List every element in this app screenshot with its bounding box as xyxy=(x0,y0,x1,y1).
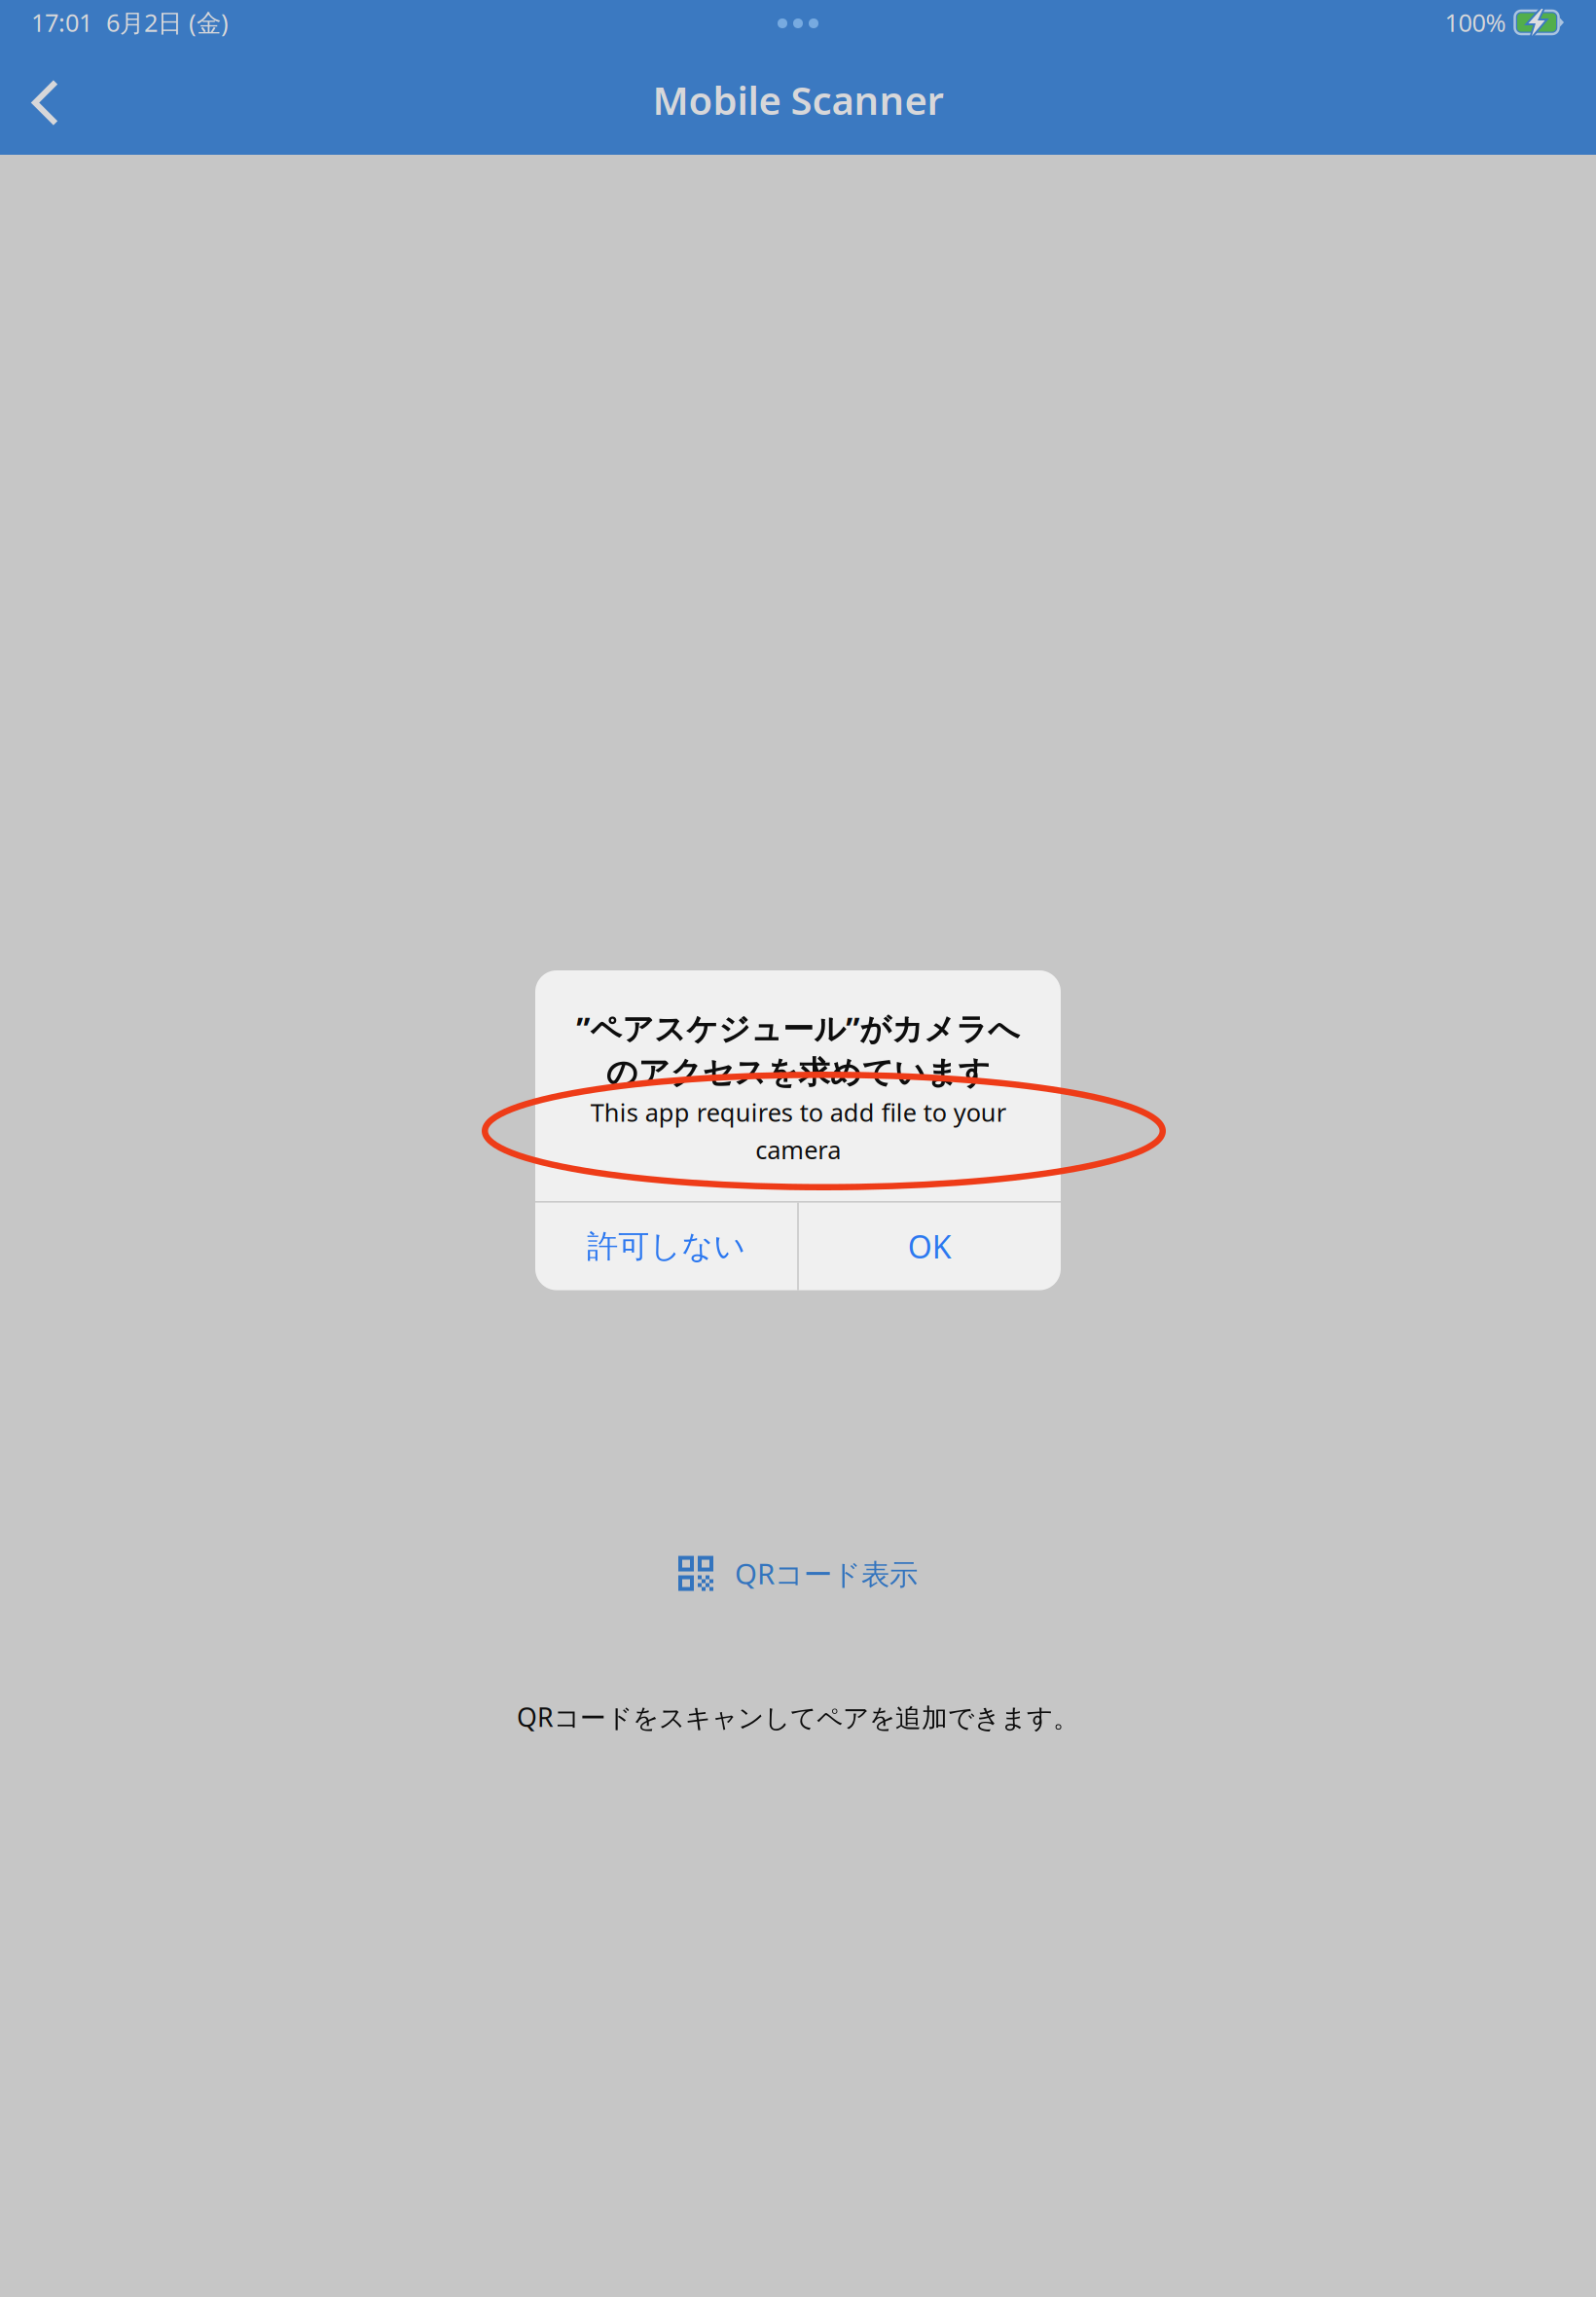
staticText: QRコード表示 xyxy=(735,1554,918,1592)
button[interactable]: QRコード表示 xyxy=(678,1554,918,1592)
staticText: This app requires to add file to your ca… xyxy=(590,1096,1006,1166)
staticText: QRコードをスキャンしてペアを追加できます。 xyxy=(517,1699,1079,1734)
staticText: Mobile Scanner xyxy=(653,74,943,126)
staticText: OK xyxy=(908,1226,952,1267)
staticText: 100% xyxy=(1445,6,1506,39)
button[interactable]: OK xyxy=(799,1203,1061,1290)
staticText: ”ペアスケジュール”がカメラへのアクセスを求めています xyxy=(576,1007,1020,1092)
button[interactable]: 許可しない xyxy=(535,1203,797,1290)
button[interactable]: Back xyxy=(0,60,83,146)
staticText: 6月2日 (金) xyxy=(92,6,229,39)
staticText: 許可しない xyxy=(587,1227,746,1265)
staticText: 17:01 xyxy=(31,6,92,39)
